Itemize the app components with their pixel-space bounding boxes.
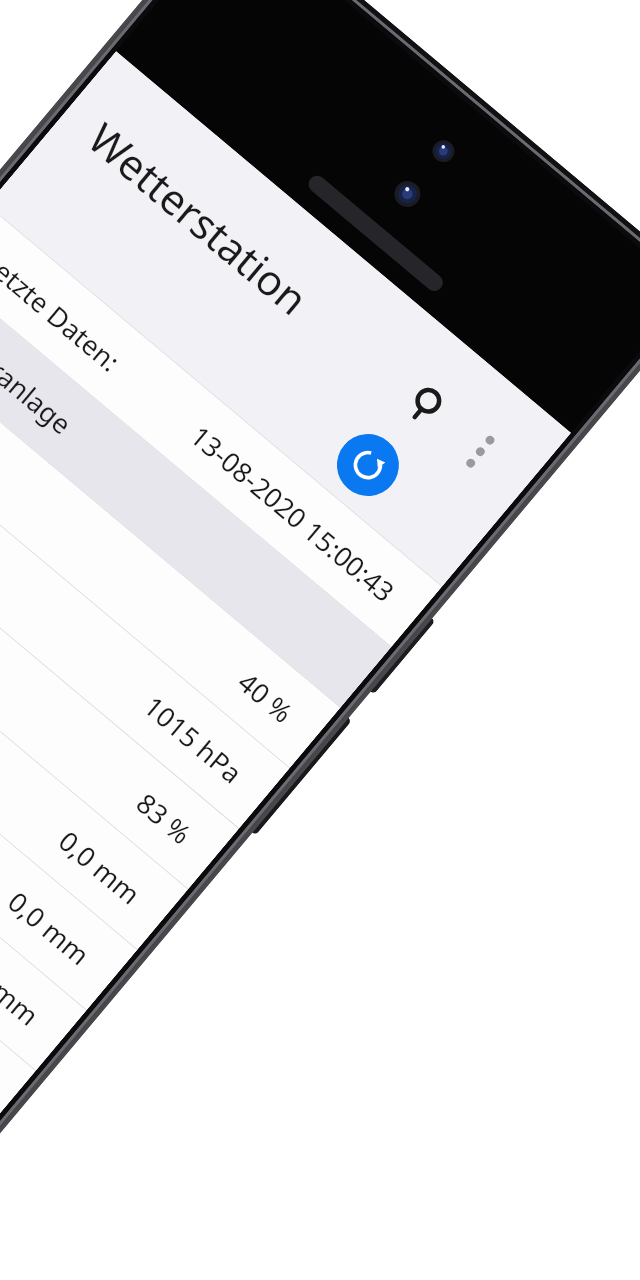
button[interactable]: Wetteranlage (0, 266, 391, 707)
staticText: Wetterstation (77, 110, 321, 327)
button[interactable]: Search (380, 360, 470, 450)
button[interactable]: Niederschlag (0, 508, 188, 949)
staticText: 1015 hPa (136, 688, 250, 791)
staticText: Bewölkung (0, 364, 7, 484)
button[interactable]: Refresh (324, 421, 412, 509)
staticText: 0,0 mm (51, 822, 148, 912)
staticText: 6,15 H:mm (0, 916, 47, 1033)
staticText: 40 % (230, 663, 301, 731)
button[interactable]: More options (435, 406, 525, 496)
staticText: 83 % (129, 784, 199, 852)
staticText: 0,0 mm (0, 883, 97, 973)
button[interactable]: Sonnenaufgang (0, 629, 86, 1070)
staticText: Wetteranlage (0, 304, 80, 442)
button[interactable]: Luftfeuchtigkeit (0, 447, 239, 889)
button[interactable]: Bewölkung (0, 326, 340, 768)
staticText: 13-08-2020 15:00:43 (182, 417, 402, 610)
staticText: Letzte Daten: (0, 243, 128, 379)
button[interactable]: Niederschlag 24h (0, 568, 137, 1010)
button[interactable]: Luftdruck (0, 387, 289, 828)
button[interactable]: Sonnenuntergang (0, 689, 36, 1131)
button[interactable]: Letzte Daten: (0, 205, 442, 647)
